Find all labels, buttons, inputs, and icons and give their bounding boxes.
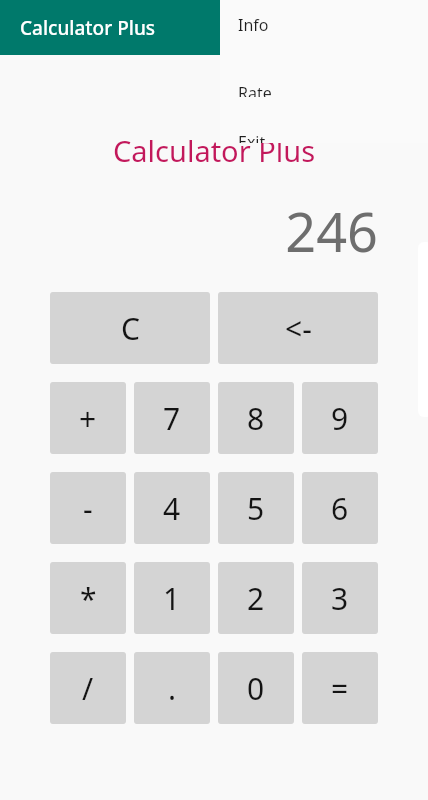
button[interactable]: 6 [302,472,378,544]
button[interactable]: 8 [218,382,294,454]
staticText: Calculator Plus [20,15,156,41]
staticText: 9 [331,398,349,439]
staticText: . [168,668,177,709]
staticText: 7 [163,398,181,439]
button[interactable]: / [50,652,126,724]
staticText: C [121,308,140,349]
staticText: 2 [247,578,265,619]
staticText: Calculator Plus [0,131,428,170]
staticText: Exit [238,131,266,143]
staticText: 4 [163,488,181,529]
button[interactable]: Info [220,0,428,48]
staticText: <- [285,308,312,349]
button[interactable]: * [50,562,126,634]
staticText: 0 [247,668,265,709]
button[interactable]: 5 [218,472,294,544]
button[interactable]: 7 [134,382,210,454]
staticText: + [79,398,97,439]
button[interactable]: Rate [220,48,428,97]
button[interactable]: . [134,652,210,724]
button[interactable]: Backspace [218,292,378,364]
staticText: / [82,668,94,709]
staticText: 6 [331,488,349,529]
button[interactable]: 4 [134,472,210,544]
button[interactable]: - [50,472,126,544]
button[interactable]: 3 [302,562,378,634]
staticText: Info [238,14,269,36]
button[interactable]: 0 [218,652,294,724]
button[interactable]: 2 [218,562,294,634]
staticText: 8 [247,398,265,439]
staticText: 1 [163,578,181,619]
button[interactable]: Exit [220,97,428,143]
button[interactable]: C [50,292,210,364]
button[interactable]: 1 [134,562,210,634]
staticText: Rate [238,82,272,97]
staticText: - [83,488,93,529]
staticText: 5 [247,488,265,529]
staticText: 246 [0,194,378,268]
staticText: 3 [331,578,349,619]
button[interactable]: 9 [302,382,378,454]
button[interactable]: = [302,652,378,724]
staticText: = [331,668,349,709]
staticText: * [80,578,97,619]
button[interactable]: + [50,382,126,454]
